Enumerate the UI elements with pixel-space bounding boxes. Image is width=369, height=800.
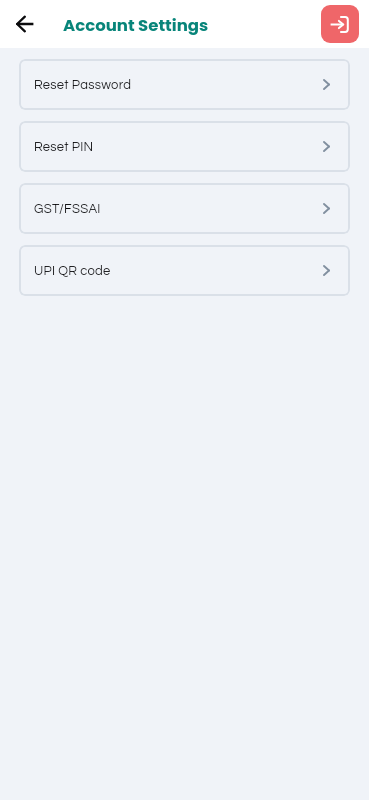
- button[interactable]: UPI QR code: [19, 245, 350, 296]
- button[interactable]: Reset Password: [19, 59, 350, 110]
- staticText: Reset PIN: [34, 140, 94, 153]
- button[interactable]: Reset PIN: [19, 121, 350, 172]
- staticText: Account Settings: [63, 14, 209, 37]
- staticText: UPI QR code: [34, 264, 111, 277]
- button[interactable]: Logout: [321, 5, 359, 43]
- button[interactable]: Back: [6, 6, 42, 42]
- staticText: GST/FSSAI: [34, 202, 101, 215]
- button[interactable]: GST/FSSAI: [19, 183, 350, 234]
- staticText: Reset Password: [34, 78, 132, 91]
